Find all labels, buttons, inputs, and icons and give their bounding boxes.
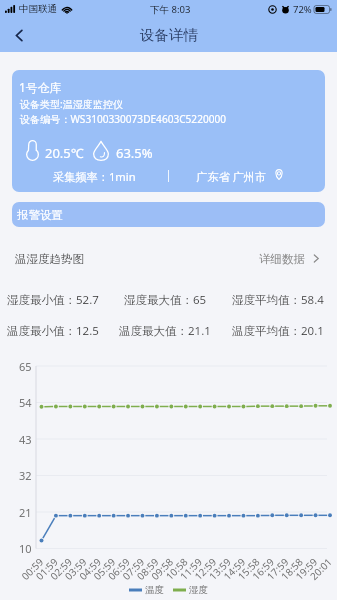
staticText: 广东省 广州市 — [196, 169, 267, 184]
button[interactable]: 温湿度趋势图 — [0, 246, 337, 271]
staticText: 温度平均值：20.1 — [232, 323, 324, 339]
staticText: 湿度平均值：58.4 — [232, 292, 324, 308]
staticText: 温湿度趋势图 — [15, 252, 84, 266]
button[interactable]: 报警设置 — [12, 202, 325, 227]
staticText: 报警设置 — [17, 208, 63, 222]
staticText: 温度最大值：21.1 — [119, 323, 211, 339]
staticText: 温度最小值：12.5 — [7, 323, 99, 339]
staticText: 详细数据 — [259, 252, 305, 266]
button[interactable]: 返回 — [0, 18, 38, 52]
staticText: 中国联通 — [19, 3, 57, 15]
staticText: 设备编号：WS3100330073DE4603C5220000 — [20, 112, 227, 126]
staticText: 设备类型:温湿度监控仪 — [20, 97, 123, 111]
staticText: 1号仓库 — [19, 79, 62, 95]
staticText: 湿度最大值：65 — [124, 292, 207, 308]
staticText: 设备详情 — [140, 26, 198, 44]
staticText: 湿度最小值：52.7 — [7, 292, 99, 308]
staticText: 20.5℃ — [45, 144, 84, 162]
staticText: 下午 8:03 — [150, 3, 191, 16]
staticText: 63.5% — [116, 144, 153, 162]
staticText: 采集频率：1min — [53, 169, 136, 184]
button[interactable]: 1号仓库 — [12, 70, 325, 192]
staticText: 72% — [293, 3, 312, 16]
